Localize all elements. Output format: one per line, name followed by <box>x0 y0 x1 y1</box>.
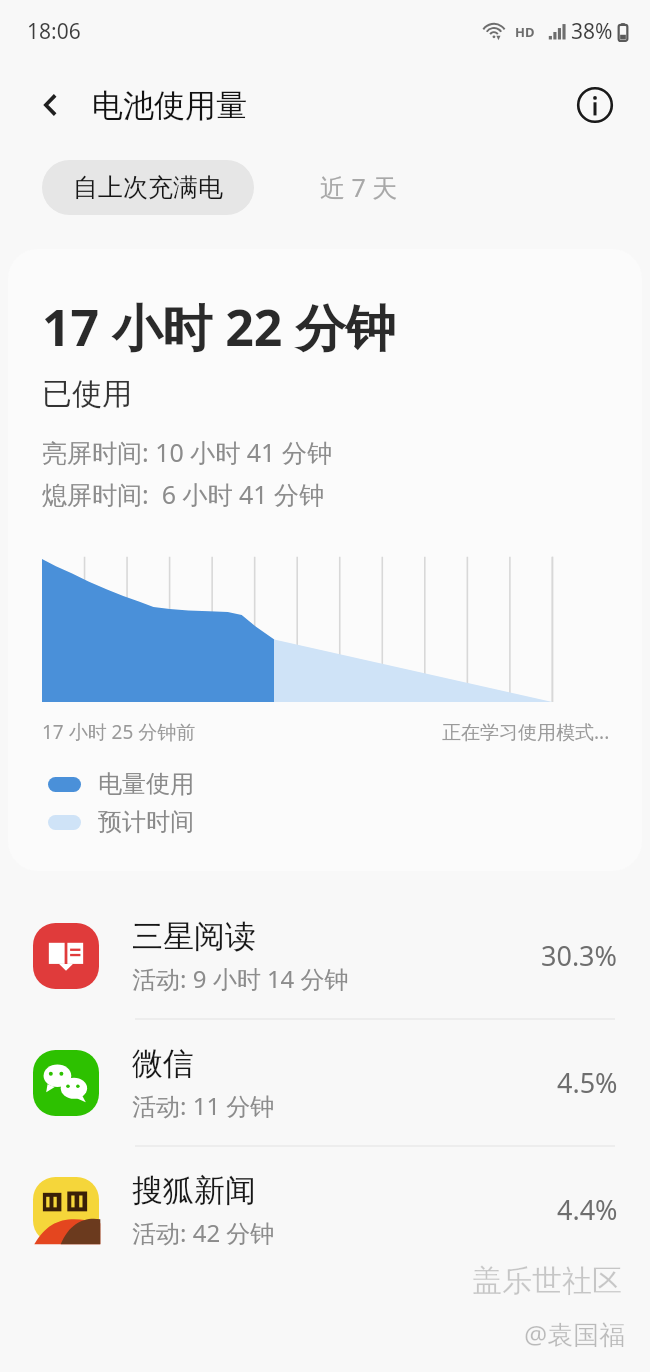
staticText: 熄屏时间: 6 小时 41 分钟 <box>42 477 325 511</box>
staticText: 电量使用 <box>98 769 194 799</box>
staticText: 亮屏时间: 10 小时 41 分钟 <box>42 435 332 469</box>
staticText: 38% <box>571 17 613 46</box>
staticText: 正在学习使用模式... <box>442 719 610 745</box>
staticText: 预计时间 <box>98 807 194 837</box>
staticText: 微信 <box>132 1044 194 1083</box>
button[interactable]: 三星阅读 <box>0 893 650 1020</box>
staticText: 盖乐世社区 <box>472 1262 622 1300</box>
staticText: 17 小时 25 分钟前 <box>42 719 196 745</box>
staticText: HD <box>515 23 535 41</box>
staticText: 活动: 9 小时 14 分钟 <box>132 962 349 995</box>
button[interactable]: Information <box>570 80 620 130</box>
staticText: 搜狐新闻 <box>132 1171 256 1210</box>
staticText: 4.5% <box>557 1064 618 1101</box>
button[interactable]: Back <box>26 80 76 130</box>
button[interactable]: 微信 <box>0 1020 650 1147</box>
staticText: 18:06 <box>27 17 81 46</box>
staticText: 活动: 11 分钟 <box>132 1089 275 1122</box>
staticText: 4.4% <box>557 1191 618 1228</box>
button[interactable]: 近 7 天 <box>306 158 412 216</box>
staticText: 17 小时 22 分钟 <box>42 293 396 361</box>
staticText: 已使用 <box>42 375 132 413</box>
staticText: 电池使用量 <box>92 86 247 125</box>
staticText: 三星阅读 <box>132 917 256 956</box>
staticText: 活动: 42 分钟 <box>132 1216 275 1249</box>
staticText: 自上次充满电 <box>73 172 223 203</box>
button[interactable]: 自上次充满电 <box>42 160 254 215</box>
staticText: @袁国福 <box>524 1316 626 1352</box>
staticText: 近 7 天 <box>320 170 398 204</box>
staticText: 30.3% <box>541 937 618 974</box>
button[interactable]: 搜狐新闻 <box>0 1147 650 1272</box>
